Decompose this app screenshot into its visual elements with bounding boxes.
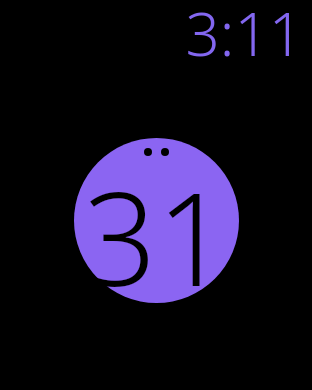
staticText: 31 (83, 149, 230, 314)
staticText: 3:11 (185, 0, 303, 74)
button[interactable]: Calendar, day 31 (74, 138, 239, 303)
button[interactable]: Current time 3:11 (185, 0, 303, 74)
